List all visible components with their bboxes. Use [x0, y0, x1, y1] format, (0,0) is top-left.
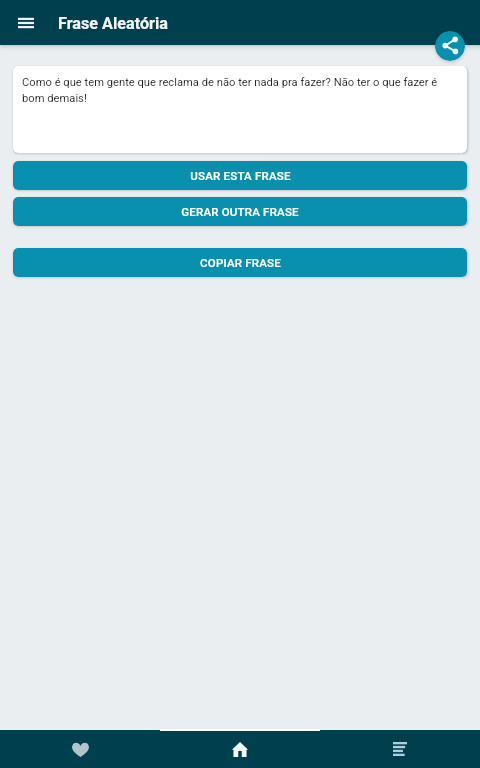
button[interactable]: COPIAR FRASE [13, 248, 467, 277]
staticText: COPIAR FRASE [200, 256, 281, 269]
staticText: GERAR OUTRA FRASE [181, 205, 299, 218]
button[interactable]: Share [435, 31, 465, 61]
button[interactable]: Home [160, 730, 320, 768]
button[interactable]: USAR ESTA FRASE [13, 161, 467, 190]
button[interactable]: GERAR OUTRA FRASE [13, 197, 467, 226]
staticText: USAR ESTA FRASE [190, 169, 291, 182]
staticText: Frase Aleatória [58, 14, 168, 33]
staticText: Como é que tem gente que reclama de não … [22, 76, 458, 105]
button[interactable]: Favourites [0, 730, 160, 768]
button[interactable]: Open navigation menu [0, 0, 51, 45]
button[interactable]: List [320, 730, 480, 768]
